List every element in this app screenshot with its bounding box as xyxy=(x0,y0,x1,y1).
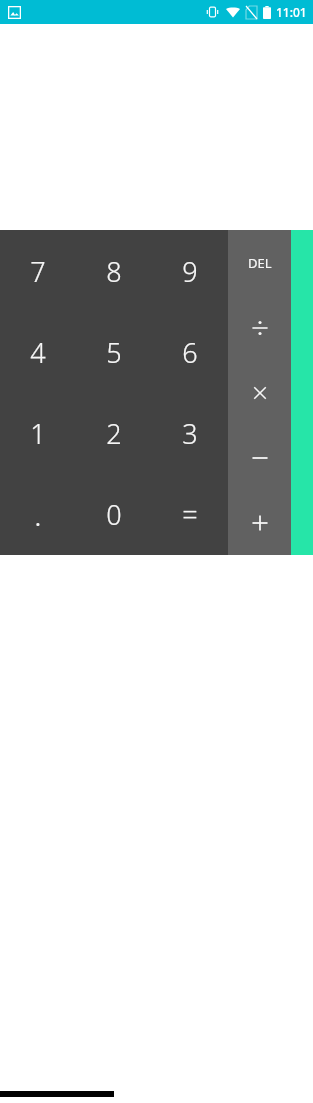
button[interactable]: DEL xyxy=(228,230,291,295)
staticText: 2 xyxy=(106,415,122,452)
button[interactable]: 8 xyxy=(76,230,152,312)
staticText: 11:01 xyxy=(276,4,307,20)
button[interactable]: 3 xyxy=(152,393,228,474)
staticText: 4 xyxy=(30,334,46,371)
staticText: 3 xyxy=(182,415,198,452)
staticText: . xyxy=(34,494,42,535)
button[interactable]: 6 xyxy=(152,312,228,393)
button[interactable]: = xyxy=(152,474,228,555)
button[interactable]: 5 xyxy=(76,312,152,393)
button[interactable]: 2 xyxy=(76,393,152,474)
staticText: 6 xyxy=(182,334,198,371)
button[interactable]: 4 xyxy=(0,312,76,393)
button[interactable]: Minus xyxy=(228,425,291,490)
staticText: 1 xyxy=(30,415,46,452)
staticText: 8 xyxy=(106,253,122,290)
button[interactable]: Divide xyxy=(228,295,291,360)
staticText: 9 xyxy=(182,253,198,290)
button[interactable]: Plus xyxy=(228,490,291,555)
staticText: 7 xyxy=(30,253,46,290)
button[interactable]: 0 xyxy=(76,474,152,555)
button[interactable]: Multiply xyxy=(228,360,291,425)
staticText: = xyxy=(182,496,198,533)
button[interactable]: . xyxy=(0,474,76,555)
button[interactable]: 7 xyxy=(0,230,76,312)
button[interactable]: 1 xyxy=(0,393,76,474)
staticText: 5 xyxy=(106,334,122,371)
staticText: DEL xyxy=(248,254,272,272)
button[interactable]: 9 xyxy=(152,230,228,312)
staticText: 0 xyxy=(106,496,122,533)
